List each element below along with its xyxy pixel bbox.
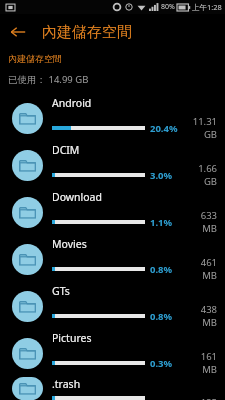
button[interactable]: Back	[0, 14, 36, 50]
staticText: 125 MB	[184, 396, 217, 400]
staticText: 80%	[161, 2, 175, 12]
staticText: 0.8%	[150, 263, 173, 276]
button[interactable]: Movies	[0, 236, 225, 283]
staticText: 0.8%	[150, 310, 173, 323]
staticText: 11.31 GB	[184, 115, 217, 141]
staticText: 438 MB	[184, 303, 217, 329]
staticText: 內建儲存空間	[42, 23, 132, 42]
staticText: 1.1%	[150, 216, 173, 229]
staticText: 0.3%	[150, 357, 173, 370]
button[interactable]: Android	[0, 95, 225, 142]
staticText: 20.4%	[150, 122, 178, 135]
staticText: Pictures	[52, 331, 92, 345]
staticText: 3.0%	[150, 169, 173, 182]
staticText: Movies	[52, 237, 87, 251]
button[interactable]: DCIM	[0, 142, 225, 189]
staticText: Android	[52, 96, 92, 110]
staticText: 633 MB	[184, 209, 217, 235]
staticText: .trash	[52, 377, 81, 391]
button[interactable]: Pictures	[0, 330, 225, 377]
button[interactable]: .trash	[0, 377, 225, 400]
staticText: GTs	[52, 284, 70, 298]
staticText: Download	[52, 190, 102, 204]
staticText: DCIM	[52, 143, 80, 157]
button[interactable]: GTs	[0, 283, 225, 330]
staticText: 1.66 GB	[184, 162, 217, 188]
staticText: 已使用： 14.99 GB	[8, 73, 89, 86]
staticText: 上午1:28	[192, 2, 222, 12]
staticText: 內建儲存空間	[8, 53, 62, 64]
staticText: 161 MB	[184, 350, 217, 376]
staticText: 461 MB	[184, 256, 217, 282]
button[interactable]: Download	[0, 189, 225, 236]
